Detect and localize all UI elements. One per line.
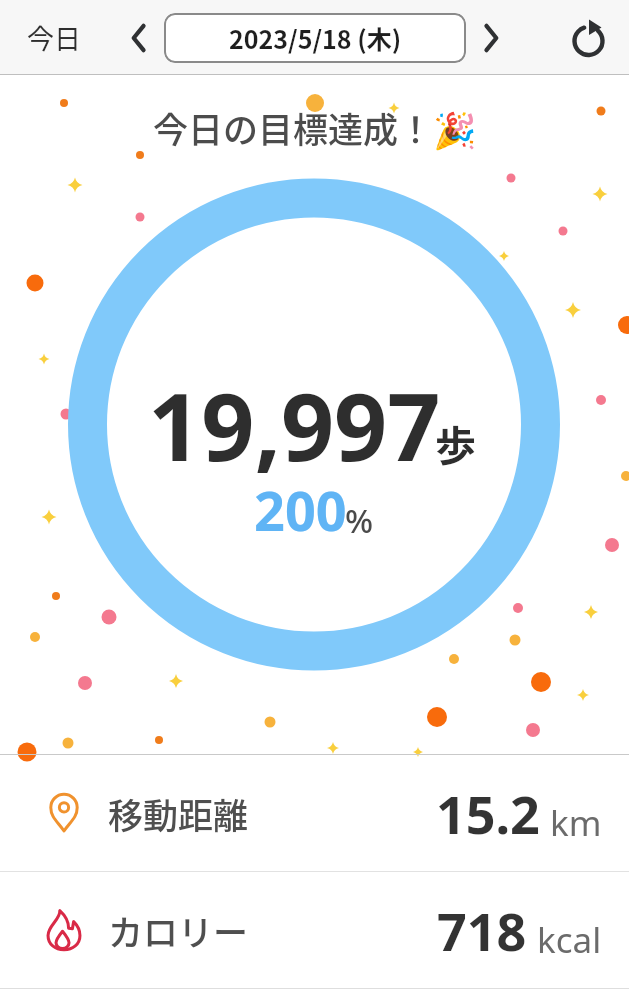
button[interactable]: カロリー [0,872,629,988]
staticText: 19,997 [148,362,441,489]
staticText: 2023/5/18 (木) [229,20,402,56]
staticText: カロリー [108,905,249,956]
button[interactable]: 2023/5/18 (木) [164,13,466,63]
staticText: 15.2 [436,778,540,849]
button[interactable]: Refresh [567,14,615,62]
button[interactable]: 移動距離 [0,755,629,871]
staticText: 歩 [435,413,476,472]
staticText: % [345,498,374,543]
staticText: km [550,799,602,847]
staticText: 今日の目標達成！🎉 [153,102,477,153]
button[interactable]: 今日 [21,12,87,63]
button[interactable]: Next day [472,19,510,57]
staticText: 移動距離 [108,788,249,839]
button[interactable]: Previous day [120,19,158,57]
staticText: 今日 [27,18,81,57]
staticText: 718 [437,895,527,966]
staticText: kcal [537,916,602,964]
staticText: 200 [254,473,347,547]
